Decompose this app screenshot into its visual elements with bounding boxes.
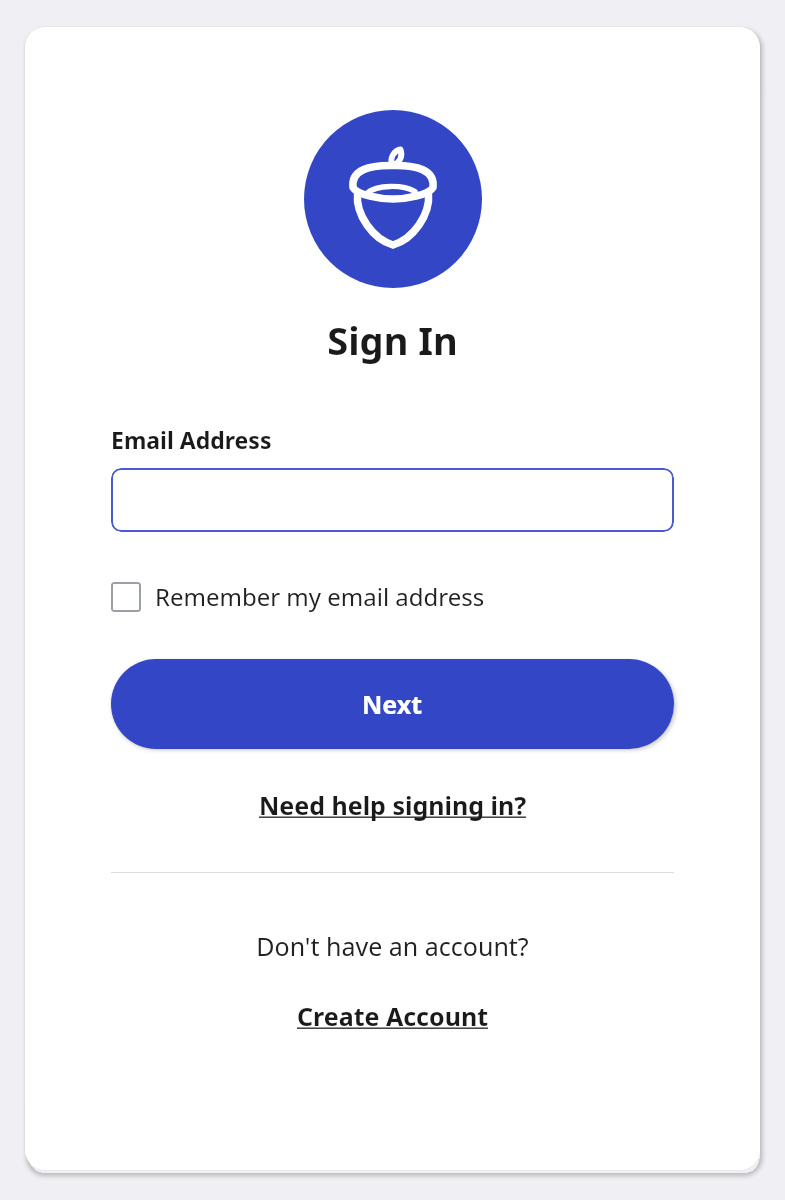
staticText: Need help signing in? [259,788,527,822]
button[interactable] [111,468,674,532]
button[interactable]: Need help signing in? [251,784,535,826]
button[interactable]: Remember my email address [111,576,485,617]
staticText: Don't have an account? [256,929,529,963]
staticText: Create Account [297,999,488,1033]
button[interactable]: Next [111,659,674,749]
button[interactable]: Create Account [289,995,496,1037]
staticText: Remember my email address [155,580,485,613]
staticText: Sign In [327,314,458,366]
staticText: Next [362,687,423,721]
other: College Board acorn logo [343,149,443,249]
staticText: Email Address [111,424,272,455]
